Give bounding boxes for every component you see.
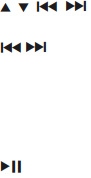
staticText: ▸⏸ xyxy=(0,154,23,178)
staticText: ▴ ▾ ⏮ ⏭ xyxy=(0,0,87,20)
staticText: ⏮ ⏭ xyxy=(0,35,47,61)
